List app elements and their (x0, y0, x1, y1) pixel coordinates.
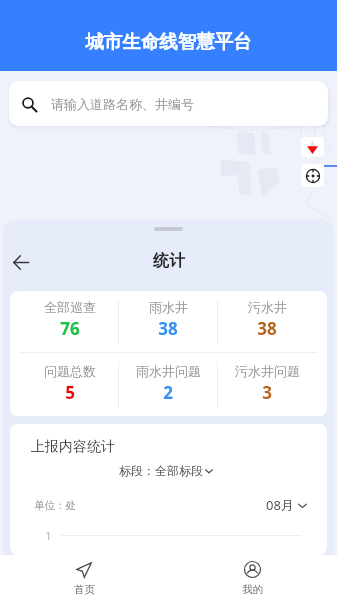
button[interactable]: 雨水井问题 (119, 354, 217, 416)
staticText: 上报内容统计 (31, 438, 115, 456)
staticText: 雨水井 (149, 299, 188, 315)
staticText: 我的 (242, 583, 263, 596)
staticText: 38 (158, 317, 178, 340)
staticText: 全部巡查 (44, 299, 96, 315)
button[interactable]: Back (7, 248, 35, 276)
staticText: 请输入道路名称、井编号 (51, 96, 194, 112)
button[interactable]: 08月 (266, 496, 308, 514)
staticText: 问题总数 (44, 363, 96, 379)
staticText: 标段：全部标段 (119, 463, 203, 478)
staticText: 雨水井问题 (136, 363, 201, 379)
button[interactable]: 标段：全部标段 (119, 463, 214, 478)
button[interactable]: 污水井问题 (218, 354, 316, 416)
button[interactable]: 污水井 (218, 291, 316, 352)
staticText: 1 (45, 528, 52, 543)
staticText: 5 (65, 381, 75, 404)
button[interactable]: 首页 (0, 555, 168, 600)
button[interactable]: 问题总数 (21, 354, 118, 416)
staticText: 76 (60, 317, 80, 340)
button[interactable]: 我的 (168, 555, 337, 600)
staticText: 单位：处 (34, 499, 76, 512)
staticText: 城市生命线智慧平台 (85, 30, 252, 53)
staticText: 3 (262, 381, 272, 404)
staticText: 38 (257, 317, 277, 340)
staticText: 污水井 (248, 299, 287, 315)
button[interactable]: Map marker layer (301, 137, 324, 157)
staticText: 统计 (153, 251, 185, 271)
staticText: 08月 (266, 496, 294, 514)
staticText: 首页 (74, 583, 95, 596)
staticText: 2 (163, 381, 173, 404)
button[interactable]: My location (301, 164, 324, 187)
button[interactable]: 全部巡查 (21, 291, 118, 352)
button[interactable]: 请输入道路名称、井编号 (9, 81, 328, 126)
button[interactable]: 雨水井 (119, 291, 217, 352)
staticText: 污水井问题 (235, 363, 300, 379)
